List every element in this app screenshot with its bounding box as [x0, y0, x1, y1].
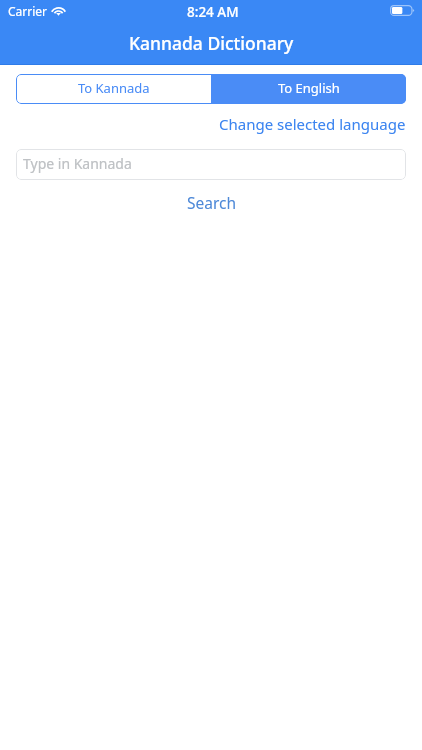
staticText: Kannada Dictionary [129, 31, 294, 55]
staticText: Search [187, 192, 237, 213]
staticText: To English [278, 79, 340, 97]
button[interactable]: Change selected language [219, 114, 406, 134]
other: Wi-Fi signal [50, 5, 67, 16]
other: Battery [390, 5, 415, 16]
button[interactable]: To Kannada [16, 74, 211, 104]
button[interactable]: To English [211, 74, 406, 104]
staticText: Type in Kannada [23, 154, 132, 173]
button[interactable]: Search [187, 192, 237, 213]
staticText: Change selected language [219, 114, 406, 134]
staticText: To Kannada [78, 79, 150, 97]
button[interactable]: Type in Kannada [16, 149, 406, 180]
staticText: Carrier [8, 3, 48, 19]
staticText: 8:24 AM [187, 3, 239, 21]
